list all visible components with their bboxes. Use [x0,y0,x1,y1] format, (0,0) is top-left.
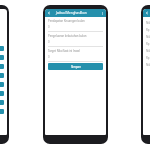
staticText: Nilai pendapatan bulan ini [146,21,150,25]
button[interactable]: Rp 0 [146,28,150,32]
button[interactable] [0,64,4,69]
button[interactable] [0,55,4,60]
button[interactable]: Nilai pendapatan bulan ini [146,35,150,39]
staticText: Target Nilai Saat ini (now) [48,49,80,53]
button[interactable]: Nilai pendapatan bulan ini [146,63,150,67]
staticText: 0 [48,40,50,44]
staticText: Nilai pendapatan bulan ini [146,35,150,39]
button[interactable]: Simpan [48,63,103,70]
staticText: Simpan [71,65,81,69]
button[interactable]: Rp 0 [146,56,150,60]
button[interactable] [0,46,4,51]
staticText: Pengeluaran kebutuhan bulan [48,34,87,38]
staticText: Rp 0 [146,56,150,60]
staticText: Jadwal Menghasilkan [56,11,87,15]
staticText: Nilai pendapatan bulan ini [146,49,150,53]
button[interactable]: Back [45,9,53,17]
staticText: Rp 0 [146,28,150,32]
button[interactable]: More options [99,9,106,17]
staticText: Pendapatan Keuangan bulan [48,19,85,23]
button[interactable]: Back [143,9,150,17]
button[interactable]: Nilai pendapatan bulan ini [146,49,150,53]
button[interactable] [0,109,4,114]
staticText: Nilai pendapatan bulan ini [146,63,150,67]
button[interactable] [0,100,4,105]
staticText: 0 [48,55,50,59]
button[interactable]: Nilai pendapatan bulan ini [146,21,150,25]
button[interactable] [0,73,4,78]
staticText: Rp 0 [146,42,150,46]
button[interactable]: Rp 0 [146,42,150,46]
button[interactable] [0,91,4,96]
staticText: 0 [48,25,50,29]
button[interactable] [0,82,4,87]
